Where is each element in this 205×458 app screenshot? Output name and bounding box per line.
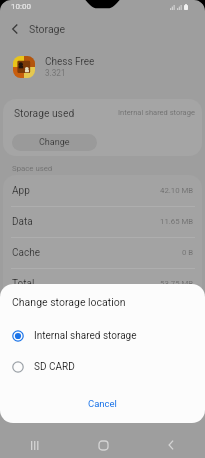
staticText: Storage [29,23,66,35]
button[interactable]: Home [69,432,137,458]
button[interactable]: Change [12,134,97,151]
staticText: 42.10 MB [160,186,194,195]
button[interactable]: Cache [3,237,202,268]
button[interactable]: Data [3,206,202,237]
staticText: Internal shared storage [34,330,137,342]
button[interactable]: Cancel [78,394,127,413]
staticText: 53.75 MB [160,279,194,288]
button[interactable]: Internal shared storage [0,321,205,351]
staticText: Internal shared storage [118,108,195,117]
staticText: 3.321 [45,68,66,78]
button[interactable]: SD CARD [0,352,205,382]
staticText: 11.65 MB [160,217,194,226]
button[interactable]: Chess Free [0,49,205,85]
staticText: SD CARD [34,361,75,373]
staticText: Storage used [14,107,75,119]
staticText: Cache [12,247,40,259]
staticText: Data [12,216,33,228]
staticText: 10:00 [11,2,31,11]
staticText: Space used [12,164,53,173]
button[interactable]: Navigate up [0,17,30,41]
staticText: App [12,185,30,197]
staticText: Total [12,278,35,290]
staticText: Chess Free [45,56,95,68]
button[interactable]: Total [3,268,202,299]
staticText: Cancel [88,398,117,409]
button[interactable]: App [3,175,202,206]
button[interactable]: Back [137,432,205,458]
button[interactable]: Recent apps [0,432,69,458]
staticText: Change [39,137,70,148]
staticText: Change storage location [12,296,126,308]
staticText: 0 B [182,248,194,257]
